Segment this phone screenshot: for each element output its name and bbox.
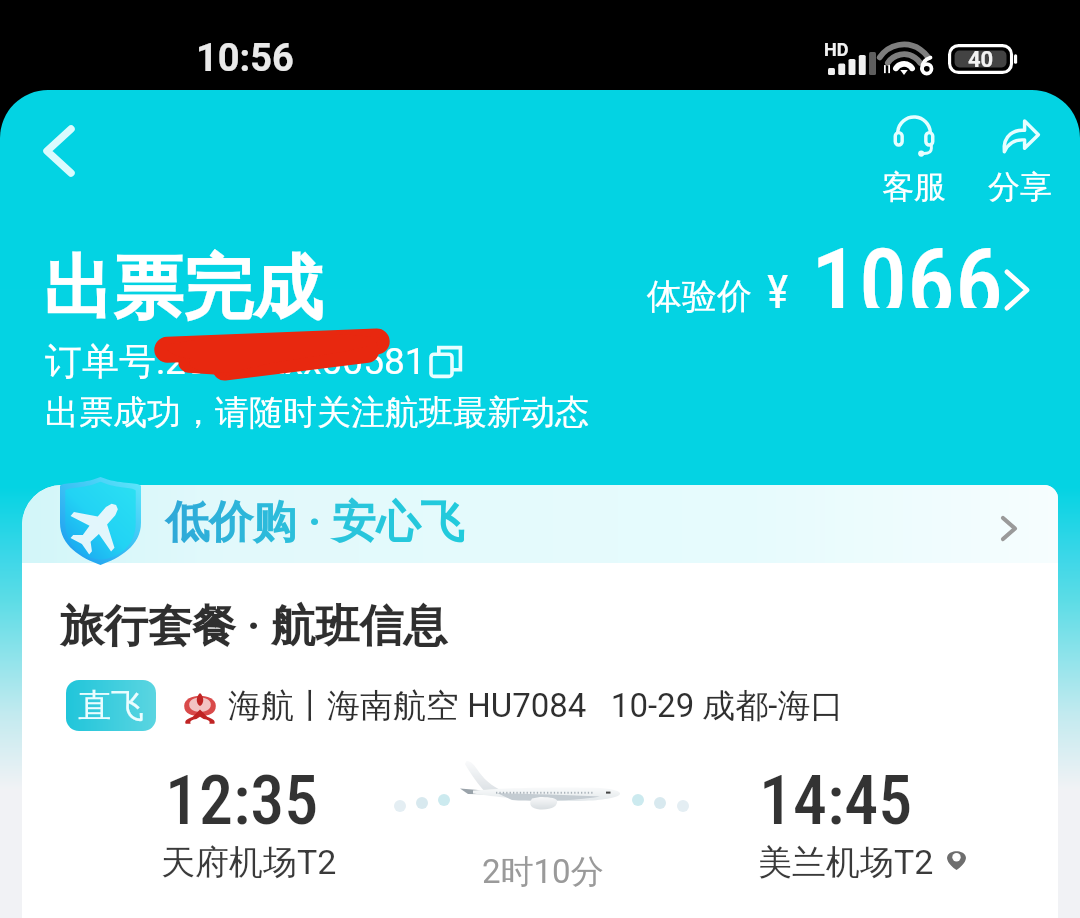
staticText: 天府机场T2 (161, 841, 337, 884)
staticText: 海航丨海南航空 HU7084 10-29 成都-海口 (228, 685, 844, 727)
staticText: 客服 (882, 167, 946, 207)
staticText: 直飞 (78, 685, 144, 727)
button[interactable]: Back (22, 114, 96, 188)
staticText: HD (824, 39, 849, 60)
staticText: 分享 (988, 167, 1052, 207)
staticText: 低价购 · 安心飞 (165, 495, 465, 550)
staticText: 40 (968, 47, 994, 73)
staticText: 出票完成 (43, 245, 323, 333)
staticText: 订单号:2025xxxx00581 (45, 338, 426, 385)
staticText: 1066 (811, 228, 1003, 308)
button[interactable]: 低价购 · 安心飞 (22, 485, 1058, 563)
staticText: 2时10分 (482, 851, 604, 893)
staticText: 体验价 (647, 274, 752, 318)
button[interactable]: 分享 (972, 114, 1068, 207)
staticText: 美兰机场T2 (758, 841, 934, 884)
staticText: 12:35 (165, 761, 319, 841)
button[interactable]: 直飞 (66, 680, 156, 731)
staticText: 出票成功，请随时关注航班最新动态 (45, 391, 589, 434)
staticText: ¥ (767, 265, 789, 319)
button[interactable]: 体验价 (645, 250, 1035, 330)
staticText: 14:45 (759, 761, 913, 841)
staticText: 旅行套餐 · 航班信息 (60, 599, 448, 654)
staticText: 10:56 (196, 36, 294, 81)
button[interactable]: 客服 (866, 114, 962, 207)
